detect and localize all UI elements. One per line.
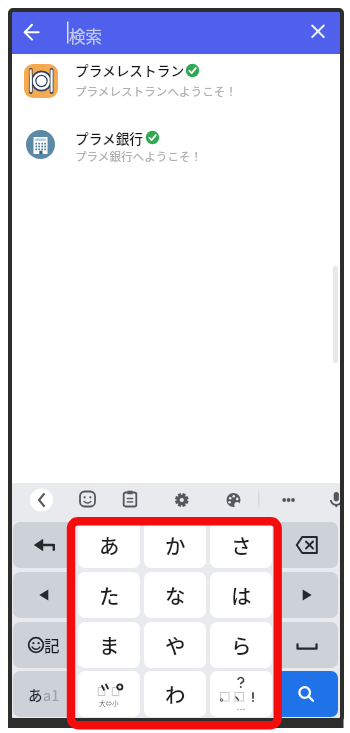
button[interactable]: あ — [13, 671, 75, 717]
staticText: あ — [99, 530, 120, 560]
button[interactable]: 検索 — [12, 12, 340, 54]
button[interactable]: ら — [210, 622, 272, 668]
staticText: プラメレストラン — [75, 60, 185, 80]
button[interactable] — [276, 671, 338, 717]
button[interactable] — [12, 482, 340, 522]
button[interactable]: ま — [78, 622, 140, 668]
button[interactable] — [276, 622, 338, 668]
staticText: た — [99, 580, 120, 610]
button[interactable] — [276, 572, 338, 618]
button[interactable]: さ — [210, 522, 272, 568]
button[interactable] — [13, 572, 75, 618]
staticText: 大⇔小 — [99, 698, 119, 707]
button[interactable]: た — [78, 572, 140, 618]
button[interactable] — [276, 522, 338, 568]
button[interactable]: な — [144, 572, 206, 618]
staticText: a1 — [43, 684, 60, 705]
staticText: わ — [165, 679, 186, 709]
staticText: 検索 — [69, 24, 102, 48]
button[interactable]: は — [210, 572, 272, 618]
staticText: ま — [99, 630, 120, 660]
staticText: や — [165, 630, 186, 660]
staticText: か — [165, 530, 186, 560]
staticText: ら — [231, 630, 252, 660]
staticText: な — [165, 580, 186, 610]
button[interactable] — [210, 671, 272, 717]
button[interactable]: か — [144, 522, 206, 568]
button[interactable]: プラメレストラン — [12, 56, 340, 116]
button[interactable]: プラメ銀行 — [12, 116, 340, 176]
button[interactable]: あ — [78, 522, 140, 568]
staticText: は — [231, 580, 252, 610]
button[interactable]: 大⇔小 — [78, 671, 140, 717]
button[interactable] — [13, 522, 75, 568]
staticText: 記 — [44, 634, 60, 656]
staticText: さ — [231, 530, 252, 560]
button[interactable]: わ — [144, 671, 206, 717]
staticText: あ — [28, 684, 43, 705]
staticText: プラメレストランへようこそ！ — [75, 83, 237, 100]
button[interactable]: 記 — [13, 622, 75, 668]
staticText: プラメ銀行へようこそ！ — [75, 148, 203, 165]
staticText: プラメ銀行 — [75, 128, 144, 148]
button[interactable]: や — [144, 622, 206, 668]
